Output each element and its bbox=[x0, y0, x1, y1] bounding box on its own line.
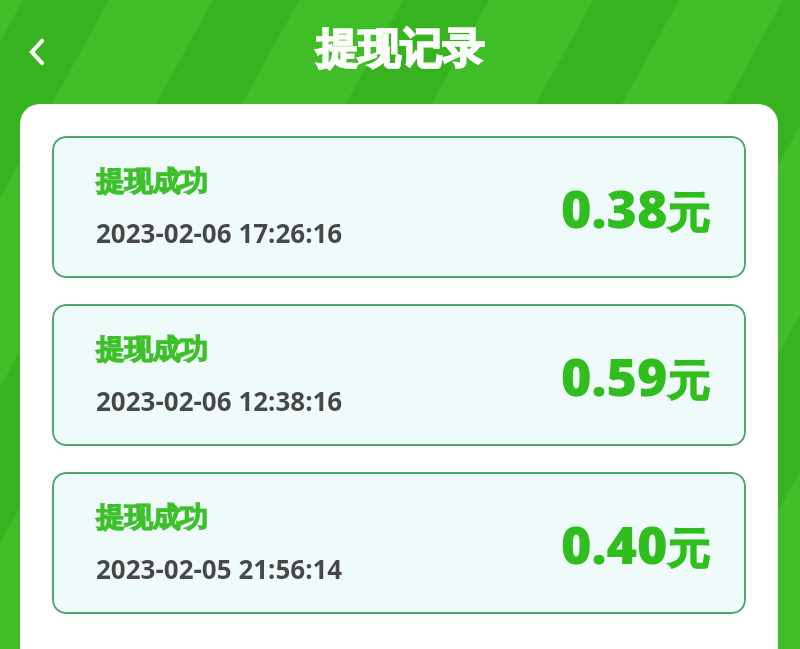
staticText: 提现成功 bbox=[96, 500, 208, 535]
staticText: 2023-02-05 21:56:14 bbox=[96, 551, 343, 586]
staticText: 元 bbox=[668, 355, 710, 408]
button[interactable]: 提现成功 bbox=[52, 472, 746, 614]
staticText: 元 bbox=[668, 187, 710, 240]
button[interactable]: 提现成功 bbox=[52, 136, 746, 278]
staticText: 提现成功 bbox=[96, 332, 208, 367]
button[interactable]: 提现成功 bbox=[52, 304, 746, 446]
staticText: 提现成功 bbox=[96, 164, 208, 199]
staticText: 0.38 bbox=[561, 172, 668, 243]
button[interactable]: Back bbox=[8, 22, 68, 82]
staticText: 0.40 bbox=[561, 508, 668, 579]
staticText: 元 bbox=[668, 523, 710, 576]
staticText: 0.59 bbox=[561, 340, 668, 411]
staticText: 2023-02-06 12:38:16 bbox=[96, 383, 343, 418]
staticText: 提现记录 bbox=[316, 23, 484, 76]
staticText: 2023-02-06 17:26:16 bbox=[96, 215, 343, 250]
